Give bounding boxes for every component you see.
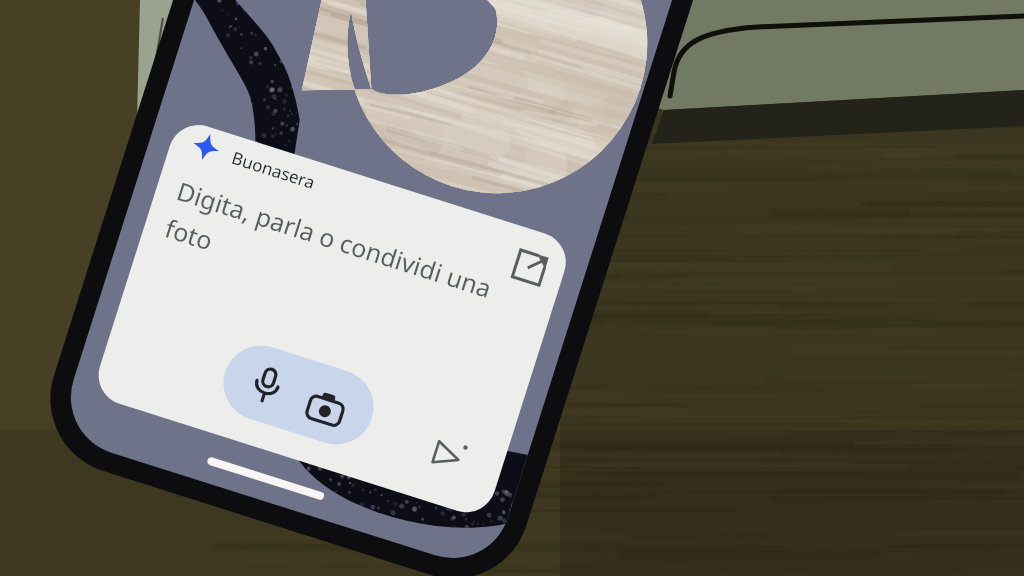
button[interactable]: Assistant card <box>0 0 1024 576</box>
